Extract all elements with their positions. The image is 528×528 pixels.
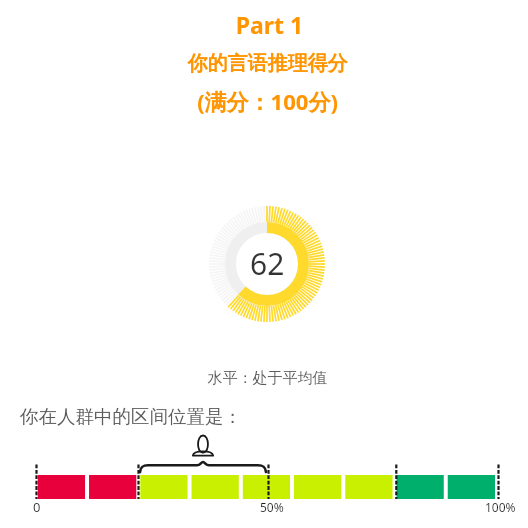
staticText: 50% bbox=[260, 499, 284, 515]
staticText: (满分：100分) bbox=[7, 86, 528, 116]
staticText: 62 bbox=[250, 243, 285, 284]
staticText: Part 1 bbox=[9, 9, 528, 40]
staticText: 100% bbox=[485, 499, 516, 515]
staticText: 你的言语推理得分 bbox=[7, 51, 528, 76]
other: 得分 62 分 bbox=[209, 206, 325, 322]
staticText: 水平：处于平均值 bbox=[7, 369, 528, 388]
staticText: 0 bbox=[33, 498, 41, 516]
other: 人群区间分布图 bbox=[0, 430, 528, 528]
staticText: 你在人群中的区间位置是： bbox=[20, 405, 242, 428]
